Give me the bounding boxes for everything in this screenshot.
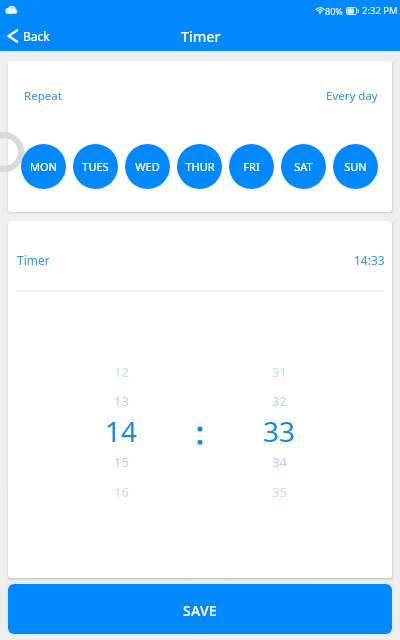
button[interactable]: FRI (229, 144, 274, 189)
button[interactable]: MON (21, 144, 66, 189)
button[interactable]: 14 (86, 412, 156, 442)
staticText: 32 (272, 392, 287, 410)
button[interactable]: 15 (86, 447, 156, 477)
staticText: SUN (344, 159, 367, 174)
button[interactable]: 33 (244, 412, 314, 442)
staticText: 15 (114, 453, 129, 471)
staticText: THUR (185, 159, 215, 174)
staticText: Back (23, 28, 50, 44)
button[interactable]: 32 (244, 386, 314, 416)
button[interactable]: 16 (86, 477, 156, 507)
staticText: TUES (82, 159, 109, 174)
staticText: 12 (114, 363, 129, 381)
button[interactable]: Timer (8, 221, 392, 290)
button[interactable]: 34 (244, 447, 314, 477)
button[interactable]: SAT (281, 144, 326, 189)
staticText: WED (135, 159, 160, 174)
staticText: 16 (114, 483, 129, 501)
button[interactable]: 31 (244, 357, 314, 387)
staticText: 31 (272, 363, 287, 381)
staticText: Timer (181, 26, 221, 46)
staticText: 33 (263, 412, 296, 442)
staticText: FRI (243, 159, 260, 174)
staticText: 34 (272, 453, 287, 471)
button[interactable]: Repeat (8, 61, 392, 125)
staticText: Repeat (24, 88, 62, 104)
staticText: 2:32 PM (362, 4, 398, 17)
button[interactable]: SUN (333, 144, 378, 189)
staticText: 14:33 (354, 252, 385, 268)
staticText: SAVE (183, 601, 218, 620)
button[interactable]: SAVE (8, 584, 392, 634)
staticText: 35 (272, 483, 287, 501)
button[interactable]: 35 (244, 477, 314, 507)
staticText: 14 (105, 412, 138, 442)
staticText: Timer (17, 252, 50, 268)
staticText: MON (30, 159, 57, 174)
staticText: 80% (325, 5, 343, 17)
button[interactable]: Back (0, 20, 60, 51)
staticText: SAT (294, 159, 313, 174)
button[interactable]: 13 (86, 386, 156, 416)
staticText: 13 (114, 392, 129, 410)
button[interactable]: WED (125, 144, 170, 189)
staticText: Every day (326, 88, 378, 104)
button[interactable]: TUES (73, 144, 118, 189)
button[interactable]: 12 (86, 357, 156, 387)
button[interactable]: THUR (177, 144, 222, 189)
